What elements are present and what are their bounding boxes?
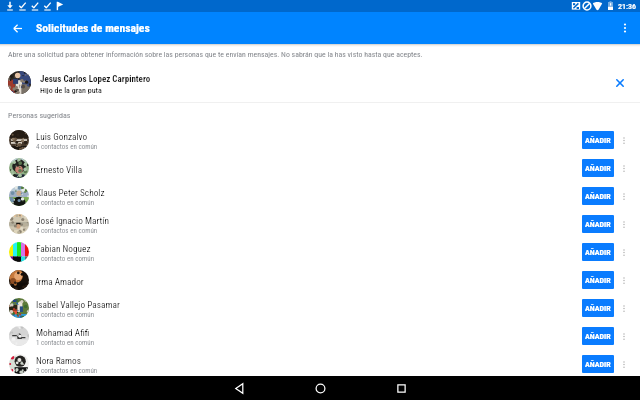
- staticText: 3 contactos en común: [36, 367, 98, 375]
- button[interactable]: More options: [615, 353, 633, 375]
- button[interactable]: José Ignacio Martín: [0, 210, 640, 238]
- staticText: AÑADIR: [585, 136, 611, 145]
- staticText: Fabian Noguez: [36, 243, 91, 254]
- staticText: Mohamad Afifi: [36, 327, 90, 338]
- button[interactable]: More options: [615, 325, 633, 347]
- button[interactable]: More options: [610, 12, 640, 44]
- button[interactable]: Dismiss request: [609, 72, 631, 94]
- button[interactable]: More options: [615, 269, 633, 291]
- staticText: AÑADIR: [585, 220, 611, 229]
- staticText: 21:36: [618, 2, 637, 11]
- staticText: Luis Gonzalvo: [36, 131, 88, 142]
- button[interactable]: AÑADIR: [582, 299, 614, 317]
- button[interactable]: Back: [199, 376, 279, 400]
- staticText: AÑADIR: [585, 304, 611, 313]
- button[interactable]: More options: [615, 297, 633, 319]
- staticText: Solicitudes de mensajes: [36, 21, 150, 35]
- staticText: Isabel Vallejo Pasamar: [36, 299, 120, 310]
- button[interactable]: AÑADIR: [582, 271, 614, 289]
- button[interactable]: Mohamad Afifi: [0, 322, 640, 350]
- button[interactable]: More options: [615, 157, 633, 179]
- button[interactable]: Fabian Noguez: [0, 238, 640, 266]
- button[interactable]: More options: [615, 185, 633, 207]
- staticText: 1 contacto en común: [36, 255, 95, 263]
- staticText: 1 contacto en común: [36, 339, 95, 347]
- staticText: José Ignacio Martín: [36, 215, 109, 226]
- button[interactable]: AÑADIR: [582, 187, 614, 205]
- button[interactable]: Ernesto Villa: [0, 154, 640, 182]
- staticText: Nora Ramos: [36, 355, 81, 366]
- staticText: AÑADIR: [585, 276, 611, 285]
- staticText: Personas sugeridas: [8, 111, 71, 120]
- button[interactable]: AÑADIR: [582, 131, 614, 149]
- staticText: AÑADIR: [585, 332, 611, 341]
- button[interactable]: AÑADIR: [582, 243, 614, 261]
- button[interactable]: More options: [615, 213, 633, 235]
- staticText: 1 contacto en común: [36, 199, 95, 207]
- staticText: AÑADIR: [585, 164, 611, 173]
- button[interactable]: AÑADIR: [582, 215, 614, 233]
- button[interactable]: Recent apps: [361, 376, 441, 400]
- button[interactable]: Isabel Vallejo Pasamar: [0, 294, 640, 322]
- staticText: AÑADIR: [585, 360, 611, 369]
- staticText: AÑADIR: [585, 248, 611, 257]
- staticText: Jesus Carlos Lopez Carpintero: [40, 74, 151, 85]
- button[interactable]: Irma Amador: [0, 266, 640, 294]
- staticText: Klaus Peter Scholz: [36, 187, 105, 198]
- staticText: AÑADIR: [585, 192, 611, 201]
- button[interactable]: Nora Ramos: [0, 350, 640, 378]
- staticText: Hijo de la gran puta: [40, 86, 102, 95]
- button[interactable]: Home: [280, 376, 360, 400]
- button[interactable]: AÑADIR: [582, 355, 614, 373]
- button[interactable]: Jesus Carlos Lopez Carpintero: [0, 58, 640, 102]
- staticText: Irma Amador: [36, 276, 84, 287]
- button[interactable]: AÑADIR: [582, 327, 614, 345]
- staticText: Ernesto Villa: [36, 164, 83, 175]
- button[interactable]: Klaus Peter Scholz: [0, 182, 640, 210]
- staticText: 1 contacto en común: [36, 311, 95, 319]
- staticText: 4 contactos en común: [36, 143, 98, 151]
- staticText: Abre una solicitud para obtener informac…: [8, 50, 423, 59]
- staticText: 4 contactos en común: [36, 227, 98, 235]
- button[interactable]: AÑADIR: [582, 159, 614, 177]
- button[interactable]: Back: [0, 12, 34, 44]
- button[interactable]: More options: [615, 241, 633, 263]
- button[interactable]: More options: [615, 129, 633, 151]
- button[interactable]: Luis Gonzalvo: [0, 126, 640, 154]
